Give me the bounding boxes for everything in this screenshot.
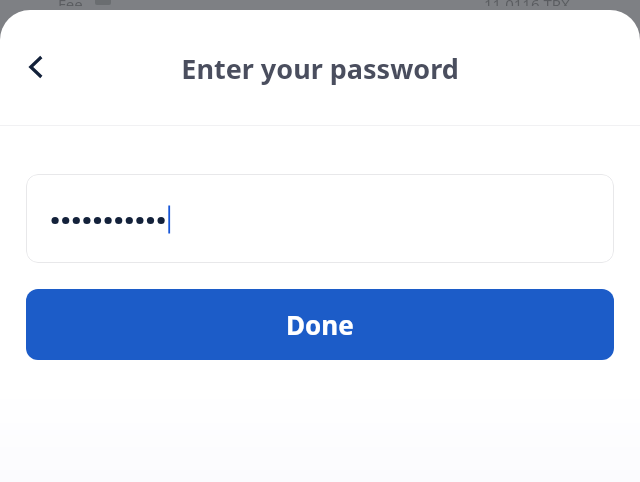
staticText: Done	[286, 307, 354, 342]
button[interactable]: Done	[26, 289, 614, 360]
staticText: Enter your password	[181, 50, 459, 87]
button[interactable]	[26, 174, 614, 263]
staticText: Fee	[58, 0, 83, 6]
staticText: 11.0116 TRX	[484, 0, 570, 6]
button[interactable]: Back	[8, 39, 64, 95]
